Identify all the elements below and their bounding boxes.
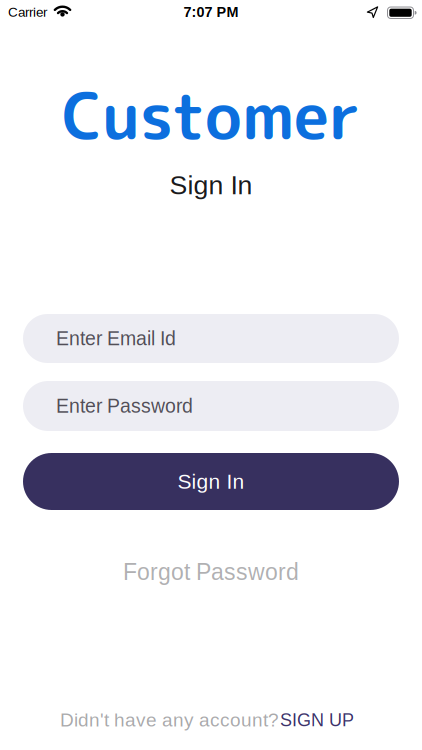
button[interactable]: SIGN UP [280, 710, 354, 730]
staticText: Forgot Password [123, 559, 299, 585]
button[interactable]: Sign In [23, 453, 399, 510]
staticText: SIGN UP [280, 710, 354, 730]
staticText: Sign In [169, 170, 252, 200]
staticText: Enter Email Id [23, 323, 173, 353]
staticText: Enter Password [56, 395, 193, 417]
textField[interactable]: Enter Password [23, 391, 399, 421]
staticText: 7:07 PM [183, 4, 238, 20]
staticText: Carrier [8, 4, 47, 19]
staticText: Enter Email Id [56, 328, 176, 349]
staticText: Customer [62, 70, 360, 160]
staticText: Didn't have any account? [60, 709, 279, 731]
textField[interactable]: Enter Email Id [23, 323, 399, 353]
staticText: Sign In [177, 470, 244, 493]
staticText: Enter Password [23, 391, 190, 421]
button[interactable]: Forgot Password [123, 557, 299, 587]
